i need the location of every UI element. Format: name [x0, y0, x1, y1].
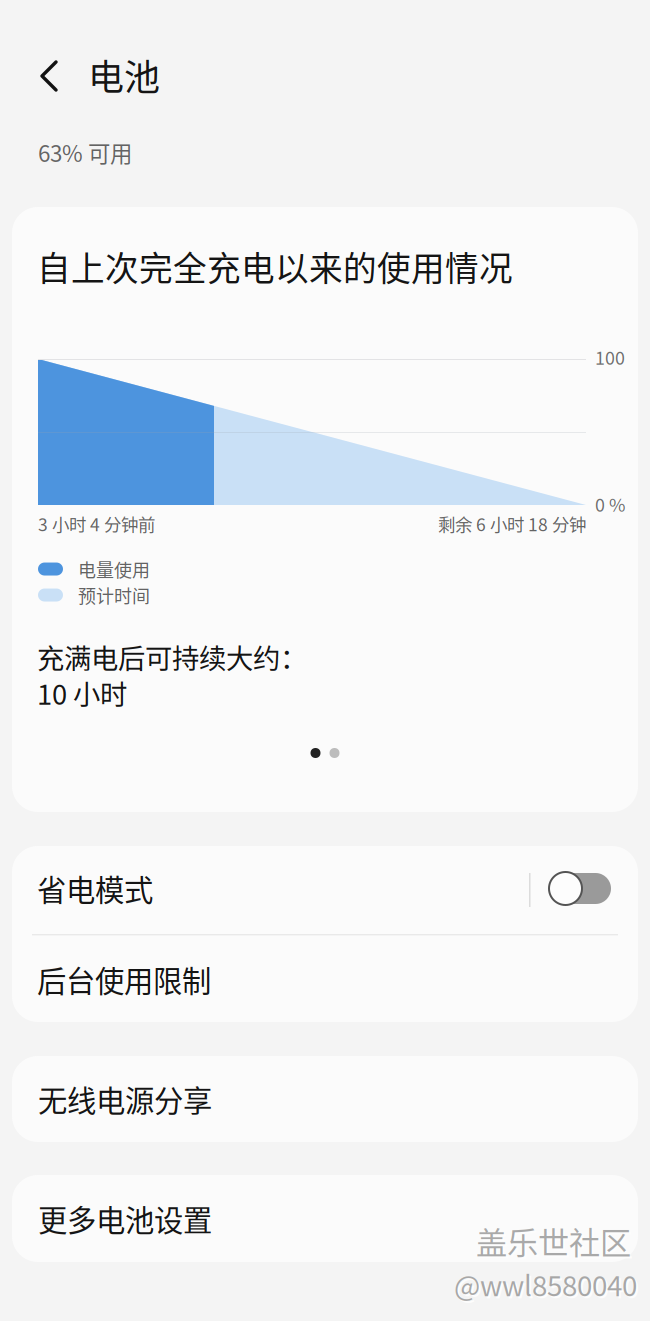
staticText: 更多电池设置 — [38, 1197, 212, 1240]
staticText: 剩余 6 小时 18 分钟 — [438, 511, 586, 536]
staticText: 充满电后可持续大约： — [37, 637, 307, 677]
button[interactable]: Back — [34, 56, 82, 104]
button[interactable]: 省电模式 — [12, 846, 638, 936]
staticText: @wwl8580040 — [454, 1264, 637, 1304]
staticText: 无线电源分享 — [38, 1078, 212, 1120]
staticText: 省电模式 — [37, 867, 153, 909]
button[interactable]: 无线电源分享 — [12, 1056, 638, 1142]
staticText: 后台使用限制 — [37, 958, 211, 1000]
staticText: 盖乐世社区 — [478, 1220, 633, 1265]
staticText: 3 小时 4 分钟前 — [38, 511, 155, 536]
staticText: 盖乐世社区 — [476, 1218, 631, 1263]
staticText: 预计时间 — [78, 582, 150, 608]
staticText: 电池 — [88, 49, 160, 101]
button[interactable]: 后台使用限制 — [12, 934, 638, 1022]
staticText: 100 — [595, 344, 625, 370]
staticText: @wwl8580040 — [456, 1266, 639, 1306]
staticText: 63% 可用 — [38, 136, 132, 168]
staticText: 0 % — [595, 491, 625, 517]
button[interactable]: 更多电池设置 — [12, 1175, 638, 1262]
staticText: 10 小时 — [37, 673, 127, 713]
staticText: 自上次完全充电以来的使用情况 — [37, 242, 513, 291]
staticText: 电量使用 — [78, 556, 150, 582]
